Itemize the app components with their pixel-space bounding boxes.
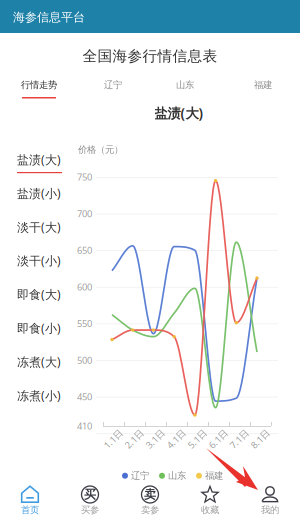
staticText: 收藏: [201, 504, 219, 516]
staticText: 辽宁: [131, 470, 149, 481]
staticText: 7.1日: [228, 433, 250, 445]
button[interactable]: 收藏: [180, 481, 240, 518]
staticText: 3.1日: [144, 433, 166, 445]
button[interactable]: 盐渍(大): [15, 153, 77, 183]
staticText: 410: [77, 420, 92, 432]
staticText: 辽宁: [104, 79, 122, 91]
staticText: 山东: [168, 470, 186, 481]
staticText: 全国海参行情信息表: [82, 47, 217, 65]
staticText: 1.1日: [102, 433, 124, 445]
staticText: 750: [77, 171, 92, 183]
button[interactable]: 冻煮(小): [15, 389, 77, 419]
staticText: 4.1日: [165, 433, 187, 445]
button[interactable]: 首页: [0, 481, 60, 518]
staticText: 600: [77, 281, 92, 293]
button[interactable]: 淡干(大): [15, 220, 77, 250]
staticText: 山东: [176, 79, 194, 91]
staticText: 盐渍(大): [154, 104, 203, 122]
button[interactable]: 福建: [243, 78, 283, 92]
staticText: 买: [84, 487, 96, 502]
button[interactable]: 我的: [240, 481, 300, 518]
button[interactable]: 淡干(小): [15, 254, 77, 284]
staticText: 我的: [261, 504, 279, 516]
button[interactable]: 买: [60, 481, 120, 518]
staticText: 8.1日: [249, 433, 271, 445]
staticText: 即食(小): [17, 320, 61, 336]
staticText: 650: [77, 244, 92, 256]
staticText: 价格（元）: [78, 144, 123, 155]
staticText: 500: [77, 354, 92, 366]
staticText: 冻煮(大): [17, 354, 61, 370]
staticText: 即食(大): [17, 286, 61, 302]
staticText: 盐渍(大): [17, 151, 61, 167]
staticText: 5.1日: [186, 433, 208, 445]
staticText: 卖参: [141, 504, 159, 516]
staticText: 首页: [21, 504, 39, 516]
button[interactable]: 即食(小): [15, 321, 77, 351]
staticText: 淡干(大): [17, 219, 61, 235]
button[interactable]: 即食(大): [15, 288, 77, 318]
staticText: 2.1日: [123, 433, 145, 445]
staticText: 冻煮(小): [17, 387, 61, 403]
staticText: 卖: [144, 487, 156, 502]
staticText: 行情走势: [21, 79, 57, 91]
button[interactable]: 山东: [165, 78, 205, 92]
staticText: 淡干(小): [17, 253, 61, 268]
staticText: 550: [77, 317, 92, 330]
button[interactable]: 盐渍(小): [15, 187, 77, 217]
button[interactable]: 冻煮(大): [15, 355, 77, 385]
staticText: 6.1日: [207, 433, 229, 445]
staticText: 福建: [205, 470, 223, 481]
staticText: 福建: [254, 79, 272, 91]
staticText: 买参: [81, 504, 99, 516]
staticText: 海参信息平台: [13, 10, 85, 25]
button[interactable]: 辽宁: [93, 78, 133, 92]
button[interactable]: 卖: [120, 481, 180, 518]
staticText: 450: [77, 390, 92, 403]
button[interactable]: 行情走势: [13, 79, 65, 103]
staticText: 盐渍(小): [17, 185, 61, 201]
staticText: 700: [77, 207, 92, 220]
